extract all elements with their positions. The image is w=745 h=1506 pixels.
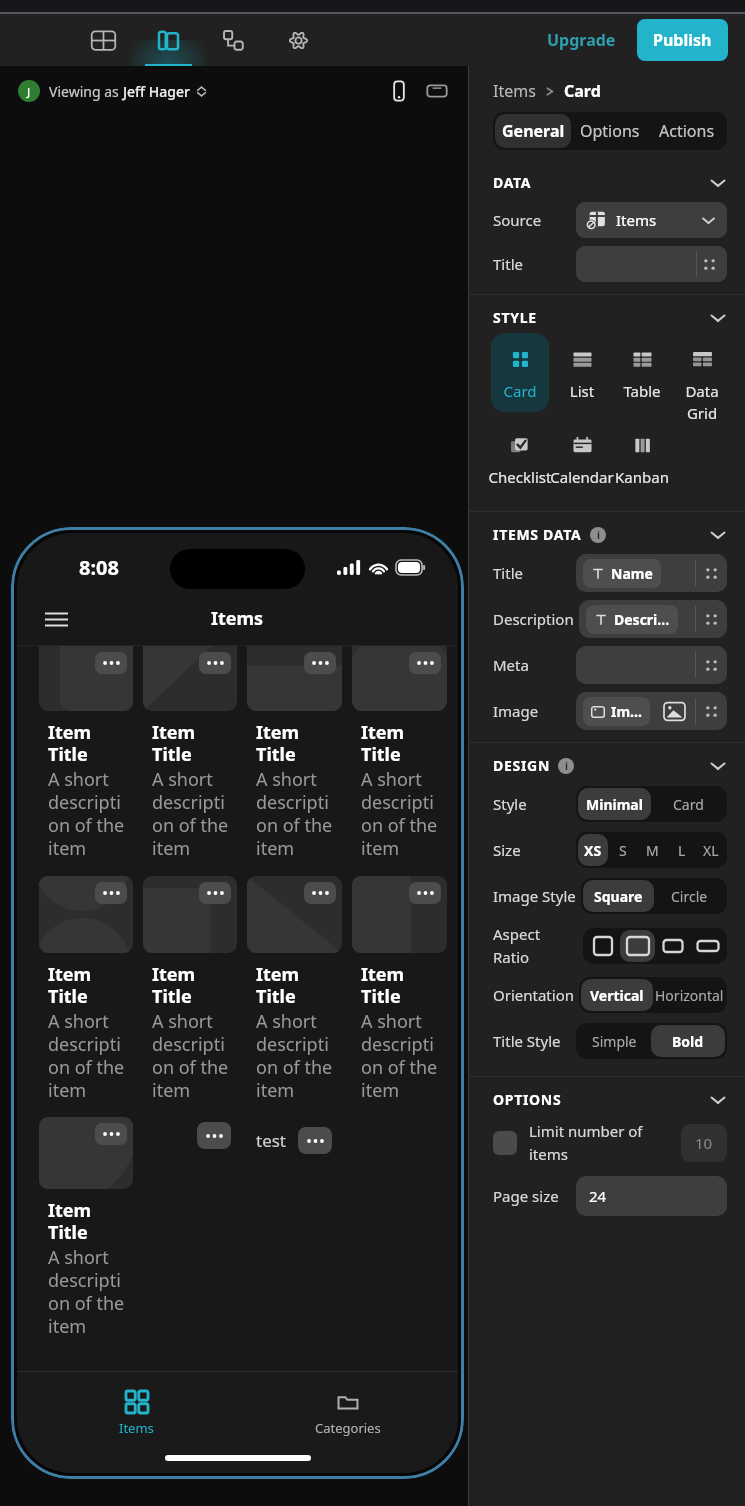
- button[interactable]: [553, 419, 611, 493]
- button[interactable]: More options: [39, 876, 133, 1102]
- button[interactable]: Simple: [578, 1025, 651, 1057]
- staticText: DESIGN: [493, 756, 550, 775]
- staticText: Description: [493, 609, 574, 629]
- button[interactable]: Aspect ratio option 2: [620, 930, 655, 962]
- button[interactable]: Actions: [648, 114, 725, 148]
- staticText: A short description of the item: [48, 1009, 130, 1102]
- button[interactable]: More options: [298, 1127, 332, 1154]
- button[interactable]: Phone preview: [382, 74, 416, 108]
- button[interactable]: 10: [681, 1124, 727, 1162]
- button[interactable]: [576, 246, 727, 282]
- staticText: Item Title: [48, 1198, 130, 1245]
- button[interactable]: Aspect ratio option 1: [585, 930, 620, 962]
- button[interactable]: Name: [576, 554, 727, 592]
- staticText: Calendar: [536, 467, 628, 487]
- button[interactable]: XL: [696, 834, 725, 866]
- button[interactable]: [553, 333, 611, 412]
- staticText: 8:08: [79, 554, 119, 581]
- button[interactable]: More options: [197, 1122, 231, 1149]
- staticText: Horizontal: [655, 986, 724, 1005]
- button[interactable]: OPTIONS: [469, 1077, 745, 1115]
- button[interactable]: [491, 419, 549, 493]
- button[interactable]: More options: [409, 652, 441, 674]
- button[interactable]: Circle: [654, 880, 725, 912]
- button[interactable]: More options: [247, 876, 342, 1102]
- button[interactable]: More options: [95, 1123, 127, 1145]
- staticText: Im...: [611, 702, 642, 721]
- button[interactable]: Items: [493, 80, 536, 102]
- button[interactable]: Upgrade: [525, 21, 628, 59]
- button[interactable]: L: [667, 834, 696, 866]
- button[interactable]: Panels: [84, 21, 122, 59]
- button[interactable]: More options: [143, 876, 237, 1102]
- staticText: S: [619, 841, 627, 860]
- button[interactable]: Aspect ratio option 4: [690, 930, 725, 962]
- button[interactable]: Square: [583, 880, 654, 912]
- button[interactable]: [613, 419, 671, 493]
- staticText: Checklist: [474, 467, 566, 487]
- button[interactable]: More options: [143, 646, 237, 860]
- staticText: i: [597, 528, 600, 542]
- button[interactable]: Flow: [214, 21, 252, 59]
- button[interactable]: XS: [578, 834, 608, 866]
- button[interactable]: ITEMS DATA: [469, 512, 745, 550]
- button[interactable]: More options: [352, 876, 447, 1102]
- button[interactable]: [673, 333, 731, 412]
- button[interactable]: Items: [97, 1389, 176, 1439]
- button[interactable]: Items: [576, 202, 727, 238]
- button[interactable]: More options: [199, 652, 231, 674]
- button[interactable]: Options: [571, 114, 648, 148]
- staticText: STYLE: [493, 308, 537, 327]
- button[interactable]: DATA: [469, 160, 745, 198]
- button[interactable]: M: [638, 834, 667, 866]
- button[interactable]: Layout: [149, 21, 187, 59]
- button[interactable]: More options: [39, 646, 133, 860]
- button[interactable]: Limit number of items: [493, 1131, 517, 1155]
- button[interactable]: Publish: [637, 19, 728, 61]
- staticText: Title: [493, 563, 523, 583]
- button[interactable]: More options: [95, 882, 127, 904]
- button[interactable]: STYLE: [469, 295, 745, 333]
- staticText: Item Title: [48, 962, 130, 1009]
- staticText: Item Title: [361, 962, 443, 1009]
- staticText: Minimal: [586, 795, 643, 814]
- staticText: 10: [695, 1133, 713, 1153]
- button[interactable]: Im...: [576, 692, 727, 730]
- button[interactable]: Settings: [279, 21, 317, 59]
- button[interactable]: S: [608, 834, 638, 866]
- button[interactable]: More options: [95, 652, 127, 674]
- button[interactable]: Vertical: [581, 979, 653, 1011]
- button[interactable]: More options: [39, 1117, 133, 1338]
- button[interactable]: Card: [651, 788, 725, 820]
- staticText: Vertical: [590, 986, 644, 1005]
- button[interactable]: [613, 333, 671, 412]
- button[interactable]: More options: [352, 646, 447, 860]
- button[interactable]: Descri...: [579, 600, 727, 638]
- button[interactable]: Bold: [651, 1025, 725, 1057]
- staticText: L: [678, 841, 686, 860]
- staticText: OPTIONS: [493, 1090, 562, 1109]
- button[interactable]: 24: [576, 1176, 727, 1216]
- staticText: Title Style: [493, 1031, 561, 1051]
- button[interactable]: [576, 646, 727, 684]
- staticText: A short description of the item: [256, 1009, 338, 1102]
- button[interactable]: J: [18, 80, 207, 102]
- button[interactable]: More options: [247, 646, 342, 860]
- button[interactable]: Horizontal: [653, 979, 725, 1011]
- button[interactable]: Minimal: [578, 788, 651, 820]
- button[interactable]: Aspect ratio option 3: [655, 930, 690, 962]
- button[interactable]: [491, 333, 549, 412]
- staticText: Kanban: [596, 467, 688, 487]
- staticText: Source: [493, 210, 542, 230]
- button[interactable]: Tablet preview: [420, 74, 454, 108]
- button[interactable]: More options: [409, 882, 441, 904]
- button[interactable]: More options: [199, 882, 231, 904]
- staticText: XS: [584, 841, 602, 860]
- staticText: Item Title: [361, 720, 443, 767]
- button[interactable]: Categories: [293, 1389, 403, 1439]
- button[interactable]: More options: [304, 652, 336, 674]
- button[interactable]: General: [495, 114, 571, 148]
- button[interactable]: DESIGN: [469, 743, 745, 781]
- button[interactable]: More options: [304, 882, 336, 904]
- button[interactable]: Menu: [39, 602, 73, 636]
